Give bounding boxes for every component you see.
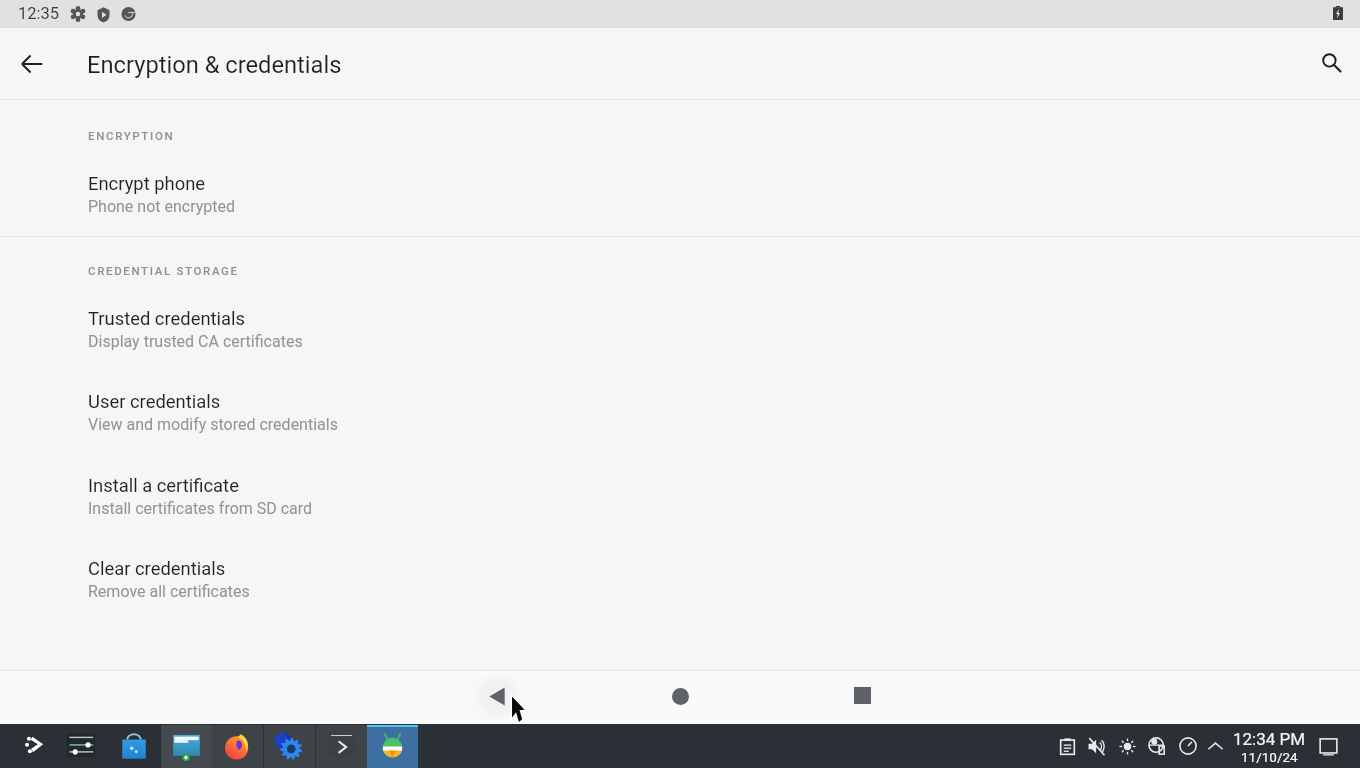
- staticText: ENCRYPTION: [88, 129, 175, 142]
- staticText: Install certificates from SD card: [88, 499, 313, 518]
- button[interactable]: System settings: [60, 728, 102, 762]
- staticText: Encrypt phone: [88, 173, 206, 195]
- staticText: Trusted credentials: [88, 308, 246, 330]
- staticText: Display trusted CA certificates: [88, 332, 303, 351]
- button[interactable]: Show hidden icons: [1201, 731, 1229, 761]
- button[interactable]: User credentials: [0, 391, 1360, 447]
- button[interactable]: Encrypt phone: [0, 173, 1360, 229]
- button[interactable]: Terminal window: [316, 725, 367, 768]
- button[interactable]: Search: [1307, 38, 1355, 86]
- staticText: View and modify stored credentials: [88, 415, 338, 434]
- staticText: Clear credentials: [88, 558, 226, 580]
- staticText: Remove all certificates: [88, 582, 250, 601]
- staticText: CREDENTIAL STORAGE: [88, 264, 239, 277]
- staticText: 11/10/24: [1241, 749, 1298, 765]
- button[interactable]: Brightness: [1113, 731, 1141, 761]
- button[interactable]: Clear credentials: [0, 558, 1360, 614]
- button[interactable]: Trusted credentials: [0, 308, 1360, 364]
- button[interactable]: Back: [462, 670, 532, 722]
- staticText: 12:35: [18, 4, 60, 23]
- button[interactable]: System settings window: [264, 725, 315, 768]
- button[interactable]: File manager window: [161, 725, 212, 768]
- button[interactable]: Firefox window: [212, 725, 263, 768]
- button[interactable]: 12:34 PM: [1229, 729, 1309, 765]
- button[interactable]: System monitor: [1174, 731, 1202, 761]
- button[interactable]: Navigate up: [8, 40, 56, 88]
- button[interactable]: Home: [645, 670, 715, 722]
- staticText: User credentials: [88, 391, 221, 413]
- staticText: Phone not encrypted: [88, 197, 236, 216]
- button[interactable]: Android emulator window: [367, 725, 418, 768]
- button[interactable]: Recent apps: [827, 669, 897, 721]
- button[interactable]: Volume muted: [1082, 731, 1110, 761]
- staticText: Install a certificate: [88, 475, 239, 497]
- button[interactable]: Clipboard: [1053, 731, 1081, 761]
- button[interactable]: Install a certificate: [0, 475, 1360, 531]
- staticText: 12:34 PM: [1233, 729, 1306, 749]
- button[interactable]: Show desktop: [1313, 731, 1343, 761]
- button[interactable]: Application launcher: [12, 729, 56, 763]
- button[interactable]: Network: [1143, 731, 1171, 761]
- staticText: Encryption & credentials: [87, 51, 342, 79]
- button[interactable]: Software store: [112, 729, 156, 763]
